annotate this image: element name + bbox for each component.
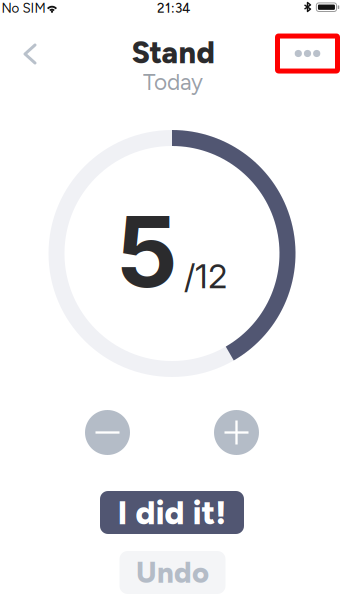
staticText: 21:34	[157, 0, 190, 16]
button[interactable]: More options	[275, 33, 340, 73]
staticText: /12	[184, 256, 227, 296]
staticText: No SIM	[1, 0, 45, 16]
button[interactable]: Undo	[119, 551, 225, 594]
button[interactable]: I did it!	[100, 491, 244, 534]
staticText: Stand	[131, 34, 214, 71]
button[interactable]: Decrease count	[85, 410, 130, 455]
staticText: Today	[143, 68, 203, 96]
staticText: I did it!	[117, 492, 226, 532]
button[interactable]: Increase count	[214, 410, 259, 455]
staticText: 5	[115, 193, 177, 310]
button[interactable]: Back	[8, 32, 52, 76]
staticText: Undo	[136, 555, 209, 590]
